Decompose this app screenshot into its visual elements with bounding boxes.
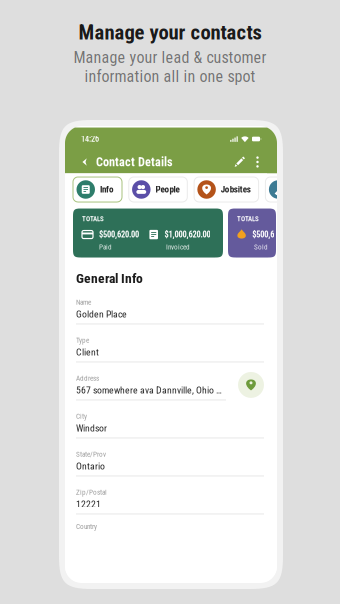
button[interactable]: Jobsites	[194, 177, 259, 202]
staticText: $500,6	[252, 230, 274, 239]
staticText: Golden Place	[76, 308, 127, 320]
staticText: Jobsites	[221, 184, 251, 195]
staticText: Name	[76, 298, 91, 306]
staticText: Client	[76, 346, 99, 358]
button[interactable]: People	[129, 177, 187, 202]
button[interactable]: Info	[73, 177, 122, 202]
staticText: 567 somewhere ava Dannville, Ohio 123...	[76, 384, 226, 396]
staticText: General Info	[76, 270, 143, 286]
staticText: information all in one spot	[84, 67, 255, 86]
staticText: 14:26	[81, 134, 99, 144]
staticText: Manage your lead & customer	[73, 48, 266, 67]
staticText: Zip/Postal	[76, 488, 107, 496]
staticText: $500,620.00	[99, 230, 139, 239]
button[interactable]: Edit	[230, 151, 249, 173]
staticText: City	[76, 412, 87, 420]
staticText: Country	[76, 522, 97, 531]
staticText: Manage your contacts	[78, 20, 261, 45]
staticText: TOTALS	[237, 215, 259, 223]
staticText: People	[156, 184, 180, 195]
staticText: Paid	[99, 243, 112, 251]
staticText: State/Prov	[76, 450, 106, 458]
button[interactable]: Back	[76, 151, 93, 173]
staticText: Info	[100, 184, 114, 195]
staticText: 12221	[76, 498, 101, 510]
staticText: $1,000,620.00	[164, 230, 210, 239]
staticText: TOTALS	[82, 215, 104, 223]
staticText: Contact Details	[96, 155, 173, 169]
staticText: Address	[76, 374, 99, 382]
button[interactable]: More options	[249, 151, 266, 173]
staticText: Type	[76, 336, 89, 344]
staticText: Sold	[254, 243, 268, 251]
staticText: Invoiced	[166, 243, 190, 251]
staticText: Ontario	[76, 460, 105, 472]
button[interactable]: Equip	[265, 177, 319, 202]
staticText: Windsor	[76, 422, 107, 434]
